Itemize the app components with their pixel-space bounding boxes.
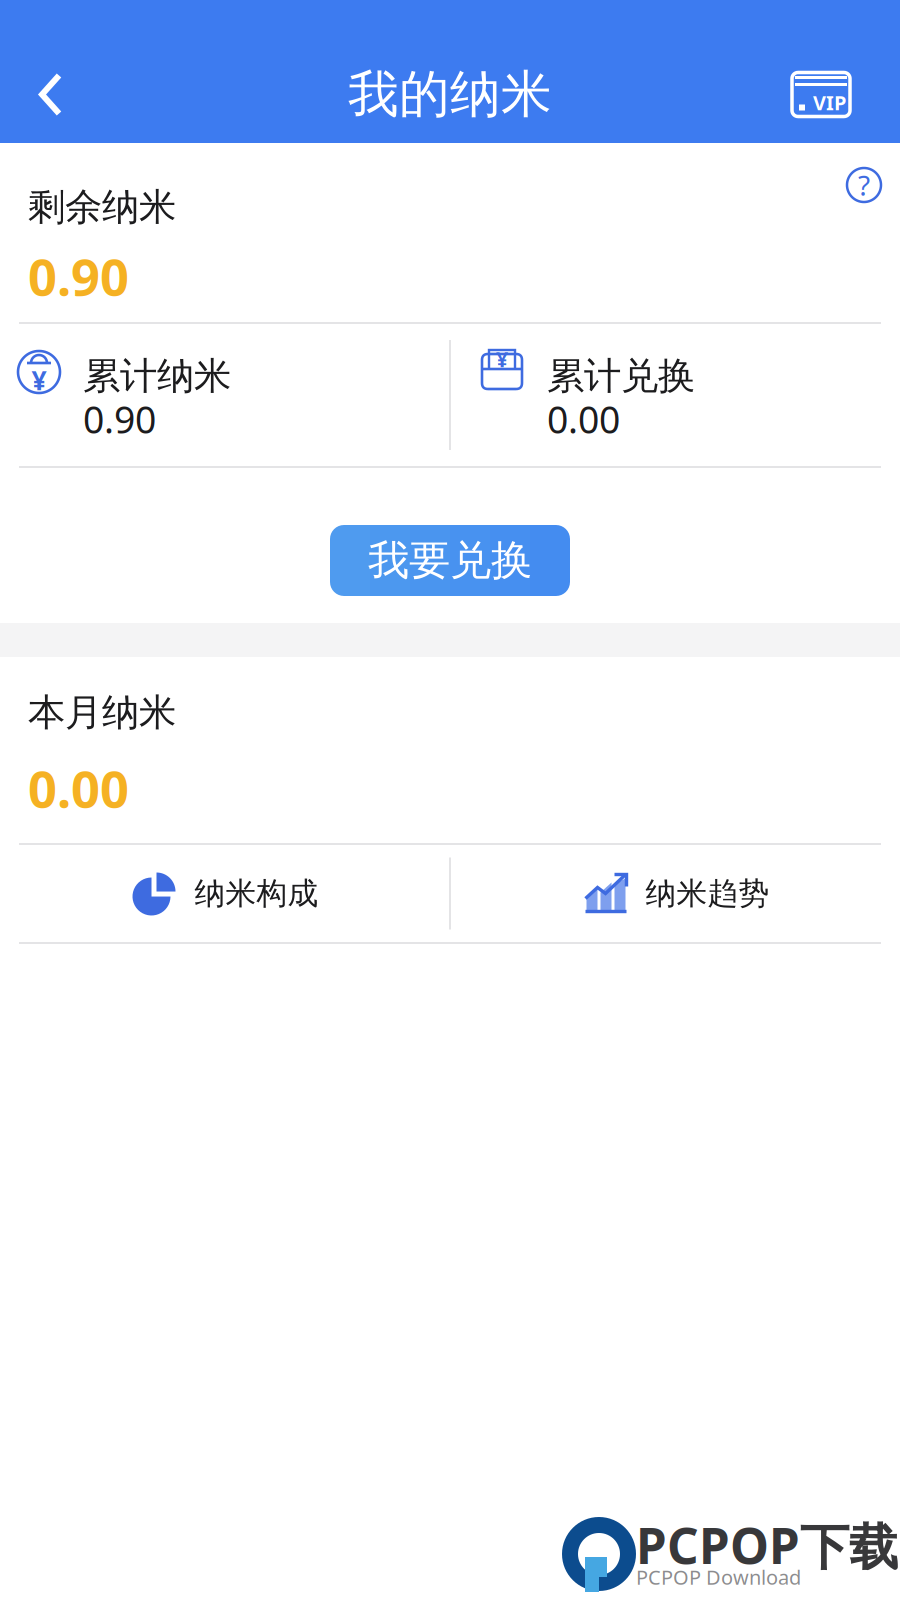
staticText: VIP [813,89,846,116]
staticText: 纳米趋势 [645,875,769,912]
button[interactable]: 纳米趋势 [451,845,900,942]
staticText: PCPOP下载 [636,1512,898,1578]
staticText: 我的纳米 [348,63,552,126]
staticText: ? [858,166,870,204]
staticText: 我要兑换 [368,535,532,586]
staticText: ¥ [496,345,508,373]
button[interactable]: 纳米构成 [0,845,449,942]
staticText: 0.00 [547,394,620,444]
staticText: 累计兑换 [547,353,695,399]
staticText: ¥ [31,362,46,398]
staticText: 0.90 [83,394,156,444]
staticText: 剩余纳米 [28,184,176,230]
button[interactable]: ¥ [451,324,900,466]
button[interactable]: 我要兑换 [330,525,570,596]
button[interactable]: ¥ [0,324,449,466]
staticText: 0.00 [28,754,129,822]
button[interactable]: Back [0,46,102,143]
staticText: 本月纳米 [28,690,176,735]
staticText: PCPOP Download [636,1564,801,1590]
staticText: 0.90 [28,242,129,310]
button[interactable]: VIP card [742,46,900,143]
staticText: 累计纳米 [83,353,231,399]
button[interactable]: Help [832,153,896,217]
staticText: 纳米构成 [194,875,318,912]
